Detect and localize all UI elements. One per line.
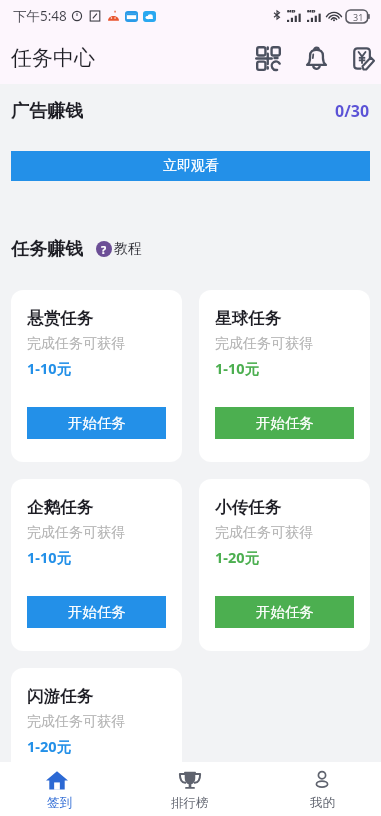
staticText: 教程 [114, 240, 142, 258]
staticText: 31 [353, 11, 364, 23]
button[interactable]: 开始任务 [215, 407, 354, 439]
button[interactable]: 我的 [280, 762, 364, 816]
button[interactable]: 开始任务 [27, 596, 166, 628]
staticText: 广告赚钱 [11, 100, 83, 122]
button[interactable]: 排行榜 [148, 762, 232, 816]
button[interactable]: 立即观看 [11, 151, 370, 181]
button[interactable]: 闪游任务 [11, 668, 182, 816]
staticText: 完成任务可获得 [27, 713, 125, 731]
staticText: 开始任务 [68, 603, 126, 621]
staticText: 1-10元 [27, 358, 72, 378]
staticText: 开始任务 [68, 792, 126, 810]
button[interactable]: Notifications [295, 37, 337, 79]
staticText: 我的 [310, 795, 335, 811]
staticText: 0/30 [335, 100, 370, 122]
staticText: 下午5:48 [13, 7, 67, 25]
staticText: 闪游任务 [27, 686, 93, 707]
button[interactable]: 星球任务 [199, 290, 370, 462]
staticText: 开始任务 [256, 603, 314, 621]
button[interactable]: 企鹅任务 [11, 479, 182, 651]
staticText: 开始任务 [256, 414, 314, 432]
staticText: 企鹅任务 [27, 497, 93, 518]
button[interactable]: 签到 [17, 762, 101, 816]
button[interactable]: 开始任务 [27, 785, 166, 816]
button[interactable]: 开始任务 [215, 596, 354, 628]
staticText: 立即观看 [163, 157, 219, 175]
staticText: 悬赏任务 [27, 308, 93, 329]
staticText: ? [101, 242, 107, 257]
staticText: 1-10元 [215, 358, 260, 378]
button[interactable]: Scan QR code [247, 37, 289, 79]
staticText: 完成任务可获得 [215, 524, 313, 542]
staticText: 任务赚钱 [11, 238, 83, 260]
staticText: 1-10元 [27, 547, 72, 567]
button[interactable]: Earnings records [343, 39, 381, 77]
button[interactable]: 悬赏任务 [11, 290, 182, 462]
button[interactable]: ? [96, 240, 142, 258]
button[interactable]: 开始任务 [27, 407, 166, 439]
staticText: 开始任务 [68, 414, 126, 432]
staticText: 小传任务 [215, 497, 281, 518]
staticText: 任务中心 [11, 45, 95, 71]
staticText: 星球任务 [215, 308, 281, 329]
button[interactable]: 小传任务 [199, 479, 370, 651]
staticText: 排行榜 [171, 795, 209, 811]
staticText: 1-20元 [27, 736, 72, 756]
staticText: 签到 [47, 795, 72, 811]
staticText: 完成任务可获得 [27, 335, 125, 353]
staticText: 1-20元 [215, 547, 260, 567]
staticText: 完成任务可获得 [27, 524, 125, 542]
staticText: 完成任务可获得 [215, 335, 313, 353]
